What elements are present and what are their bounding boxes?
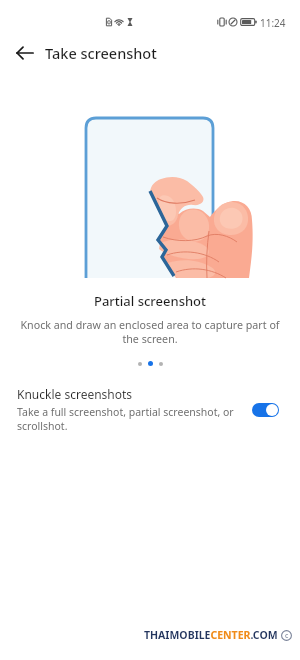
staticText: Take screenshot [45, 43, 157, 63]
button[interactable]: Page 3 [159, 362, 163, 366]
button[interactable]: Page 1 [138, 362, 142, 366]
staticText: Knock and draw an enclosed area to captu… [14, 318, 286, 346]
staticText: THAIMOBILECENTER.COM [144, 628, 278, 642]
staticText: Take a full screenshot, partial screensh… [17, 405, 239, 433]
staticText: c [285, 631, 289, 641]
staticText: Partial screenshot [0, 292, 300, 310]
button[interactable]: Knuckle screenshots toggle [252, 403, 279, 417]
button[interactable]: Knuckle screenshots [0, 382, 300, 437]
staticText: Knuckle screenshots [17, 386, 133, 402]
button[interactable]: Back [8, 36, 42, 70]
button[interactable]: Page 2 [148, 361, 153, 366]
staticText: 11:24 [260, 16, 286, 30]
